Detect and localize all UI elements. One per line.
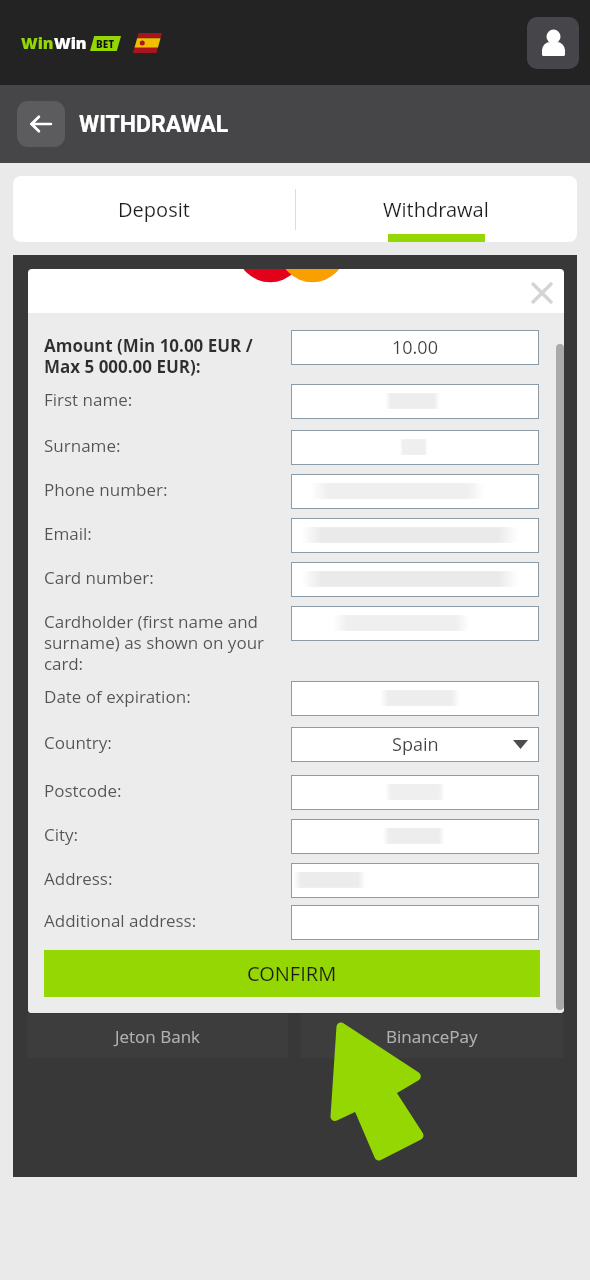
staticText: 10.00 (392, 335, 438, 360)
button[interactable]: CONFIRM (44, 950, 540, 997)
staticText: Email: (44, 522, 92, 545)
staticText: Phone number: (44, 478, 168, 501)
staticText: Win (54, 32, 87, 54)
staticText: CONFIRM (247, 960, 337, 987)
staticText: Country: (44, 731, 112, 754)
button[interactable] (291, 430, 539, 465)
staticText: Win (21, 32, 54, 54)
button[interactable] (291, 474, 539, 509)
button[interactable] (291, 819, 539, 854)
button[interactable] (291, 905, 539, 940)
staticText: Date of expiration: (44, 685, 191, 708)
staticText: Spain (392, 732, 439, 757)
staticText: WITHDRAWAL (79, 111, 229, 138)
button[interactable] (291, 518, 539, 553)
staticText: Jeton Bank (115, 1025, 201, 1048)
staticText: Amount (Min 10.00 EUR / Max 5 000.00 EUR… (44, 334, 253, 378)
button[interactable] (291, 681, 539, 716)
button[interactable]: Account (527, 17, 579, 69)
button[interactable] (291, 384, 539, 419)
button[interactable]: Deposit (13, 176, 295, 242)
staticText: First name: (44, 388, 133, 411)
staticText: Cardholder (first name and surname) as s… (44, 610, 265, 675)
button[interactable] (291, 863, 539, 898)
staticText: Postcode: (44, 779, 122, 802)
staticText: Surname: (44, 434, 121, 457)
staticText: Additional address: (44, 909, 197, 932)
staticText: City: (44, 823, 79, 846)
staticText: BinancePay (386, 1025, 478, 1048)
button[interactable] (291, 606, 539, 641)
button[interactable]: Back (17, 101, 65, 147)
button[interactable]: Jeton Bank (27, 1014, 288, 1058)
button[interactable]: Withdrawal (295, 176, 577, 242)
staticText: Deposit (118, 196, 190, 223)
staticText: Withdrawal (383, 196, 489, 223)
staticText: BET (96, 37, 115, 51)
button[interactable]: BinancePay (301, 1014, 563, 1058)
staticText: Card number: (44, 566, 154, 589)
button[interactable] (291, 775, 539, 810)
button[interactable]: Spain (291, 727, 539, 762)
button[interactable] (291, 562, 539, 597)
staticText: Address: (44, 867, 113, 890)
button[interactable]: Close (528, 279, 556, 307)
button[interactable]: 10.00 (291, 330, 539, 365)
